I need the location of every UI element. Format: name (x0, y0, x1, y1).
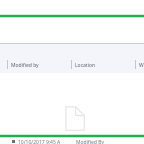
button[interactable]: Modified by (7, 58, 69, 71)
staticText: Who (139, 62, 144, 69)
button[interactable]: Who (135, 58, 144, 71)
staticText: Modified by (11, 62, 39, 69)
other: No documents (66, 107, 84, 131)
staticText: Location (75, 62, 96, 69)
staticText: 10/10/2017 9:45 A (18, 139, 61, 144)
button[interactable]: Location (71, 58, 133, 71)
staticText: Modified By (76, 139, 104, 144)
button[interactable]: File type (0, 138, 144, 144)
